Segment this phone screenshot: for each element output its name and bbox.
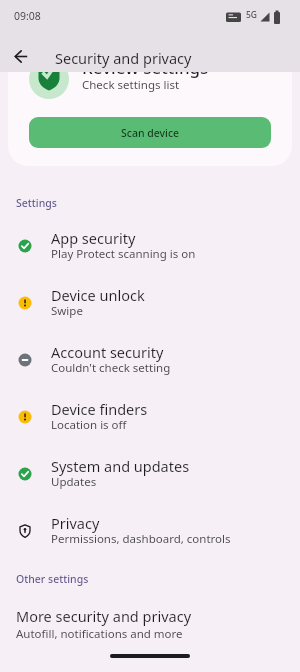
staticText: Security and privacy (55, 48, 192, 68)
button[interactable]: App security (0, 217, 300, 274)
staticText: Device finders (51, 399, 148, 419)
button[interactable]: System and updates (0, 445, 300, 502)
staticText: Other settings (16, 572, 89, 586)
button[interactable]: Device unlock (0, 274, 300, 331)
staticText: App security (51, 228, 136, 248)
button[interactable]: More security and privacy (0, 598, 300, 650)
button[interactable]: Account security (0, 331, 300, 388)
staticText: Autofill, notifications and more (16, 626, 183, 642)
staticText: Play Protect scanning is on (51, 246, 196, 262)
staticText: 5G (246, 9, 258, 21)
staticText: Couldn't check setting (51, 360, 171, 376)
staticText: System and updates (51, 456, 190, 476)
staticText: Permissions, dashboard, controls (51, 531, 231, 547)
staticText: Settings (16, 196, 57, 210)
staticText: Scan device (121, 126, 180, 140)
staticText: Review settings (82, 72, 209, 79)
staticText: Privacy (51, 513, 100, 533)
button[interactable] (14, 50, 28, 64)
staticText: More security and privacy (16, 606, 192, 626)
staticText: 09:08 (14, 9, 41, 23)
staticText: Swipe (51, 303, 83, 319)
staticText: Location is off (51, 417, 127, 433)
button[interactable]: Device finders (0, 388, 300, 445)
button[interactable]: Privacy (0, 502, 300, 559)
staticText: Account security (51, 342, 164, 362)
staticText: Check settings list (82, 77, 180, 93)
staticText: Device unlock (51, 285, 145, 305)
staticText: Updates (51, 474, 97, 490)
button[interactable]: Scan device (29, 117, 271, 148)
